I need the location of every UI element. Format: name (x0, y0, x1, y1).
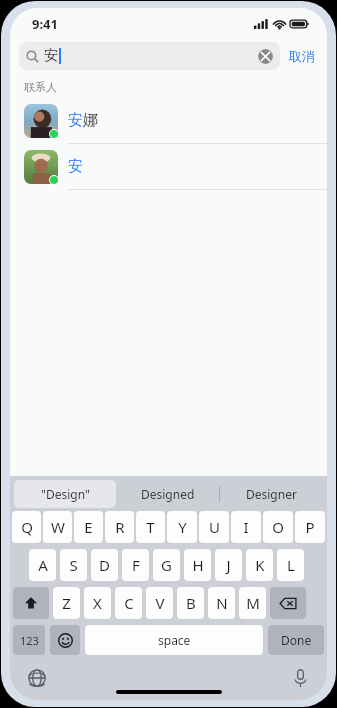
button[interactable]: G (153, 549, 180, 581)
button[interactable]: F (122, 549, 149, 581)
staticText: Y (178, 517, 187, 537)
button[interactable]: Emoji (50, 625, 80, 655)
button[interactable]: R (105, 511, 134, 543)
button[interactable]: 安 (10, 98, 327, 144)
button[interactable]: Designer (220, 480, 323, 508)
button[interactable]: 安 (19, 42, 280, 70)
button[interactable]: Designed (116, 480, 219, 508)
staticText: space (158, 632, 191, 648)
staticText: H (192, 555, 204, 575)
button[interactable]: M (239, 587, 266, 619)
staticText: F (132, 555, 140, 575)
staticText: L (287, 555, 295, 575)
button[interactable]: 安 (10, 144, 327, 190)
staticText: 取消 (289, 48, 315, 64)
staticText: Designed (141, 486, 195, 502)
button[interactable]: T (136, 511, 165, 543)
button[interactable]: space (85, 625, 263, 655)
staticText: P (305, 517, 315, 537)
staticText: K (255, 555, 265, 575)
button[interactable]: I (231, 511, 261, 543)
button[interactable]: Backspace (270, 587, 306, 619)
staticText: J (226, 555, 231, 575)
staticText: G (161, 555, 172, 575)
button[interactable]: A (29, 549, 56, 581)
button[interactable]: E (74, 511, 103, 543)
staticText: R (115, 517, 125, 537)
staticText: I (243, 517, 249, 537)
staticText: U (209, 517, 220, 537)
button[interactable]: Z (53, 587, 80, 619)
staticText: V (155, 593, 165, 613)
staticText: W (51, 517, 65, 537)
button[interactable]: V (146, 587, 173, 619)
button[interactable]: W (43, 511, 72, 543)
button[interactable]: 取消 (280, 45, 317, 67)
staticText: S (69, 555, 78, 575)
staticText: T (146, 517, 155, 537)
staticText: M (246, 593, 260, 613)
staticText: X (93, 593, 102, 613)
staticText: B (186, 593, 196, 613)
staticText: Done (281, 632, 312, 648)
staticText: O (272, 517, 284, 537)
button[interactable]: N (208, 587, 235, 619)
staticText: C (124, 593, 134, 613)
button[interactable]: D (91, 549, 118, 581)
staticText: 123 (20, 633, 39, 648)
button[interactable]: B (177, 587, 204, 619)
button[interactable]: L (277, 549, 304, 581)
staticText: E (84, 517, 93, 537)
staticText: 联系人 (24, 80, 57, 94)
button[interactable]: Done (268, 625, 324, 655)
staticText: Z (62, 593, 71, 613)
staticText: "Design" (41, 486, 90, 502)
button[interactable]: 123 (13, 625, 45, 655)
staticText: Q (21, 517, 33, 537)
button[interactable]: J (215, 549, 242, 581)
button[interactable]: Q (12, 511, 41, 543)
button[interactable]: Y (167, 511, 197, 543)
button[interactable]: P (295, 511, 325, 543)
staticText: 娜 (83, 111, 98, 130)
staticText: 9:41 (32, 15, 58, 33)
staticText: 安 (68, 111, 83, 130)
button[interactable]: C (115, 587, 142, 619)
staticText: 安 (68, 157, 83, 176)
button[interactable]: Dictation (287, 665, 313, 691)
staticText: N (216, 593, 228, 613)
button[interactable]: Shift (13, 587, 49, 619)
staticText: 安 (44, 47, 58, 65)
button[interactable]: S (60, 549, 87, 581)
button[interactable]: K (246, 549, 273, 581)
button[interactable]: Clear text (258, 49, 273, 64)
staticText: D (99, 555, 110, 575)
button[interactable]: "Design" (14, 480, 116, 508)
button[interactable]: Change keyboard (24, 665, 50, 691)
staticText: Designer (246, 486, 297, 502)
staticText: A (38, 555, 48, 575)
button[interactable]: O (263, 511, 293, 543)
button[interactable]: U (199, 511, 229, 543)
button[interactable]: H (184, 549, 211, 581)
button[interactable]: X (84, 587, 111, 619)
